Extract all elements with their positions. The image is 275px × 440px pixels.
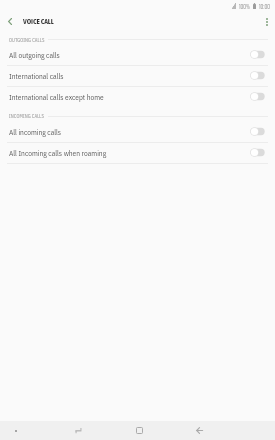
- button[interactable]: Navigate up: [0, 13, 20, 32]
- button[interactable]: All incoming calls: [0, 122, 275, 143]
- staticText: All outgoing calls: [9, 50, 60, 60]
- staticText: OUTGOING CALLS: [9, 37, 45, 43]
- button[interactable]: International calls: [0, 66, 275, 87]
- button[interactable]: Back: [169, 421, 229, 440]
- staticText: 10:00: [259, 1, 270, 12]
- staticText: VOICE CALL: [23, 17, 54, 26]
- staticText: INCOMING CALLS: [9, 113, 45, 119]
- button[interactable]: Hide navigation bar: [0, 421, 31, 440]
- button[interactable]: International calls except home: [0, 87, 275, 108]
- button[interactable]: More options: [258, 13, 275, 32]
- button[interactable]: All Incoming calls when roaming: [0, 143, 275, 164]
- button[interactable]: Recent apps: [48, 421, 109, 440]
- staticText: All incoming calls: [9, 127, 62, 137]
- staticText: All Incoming calls when roaming: [9, 148, 107, 158]
- button[interactable]: Home: [109, 421, 169, 440]
- button[interactable]: All outgoing calls: [0, 45, 275, 66]
- staticText: International calls: [9, 71, 64, 81]
- staticText: International calls except home: [9, 92, 104, 102]
- staticText: 100%: [239, 1, 250, 12]
